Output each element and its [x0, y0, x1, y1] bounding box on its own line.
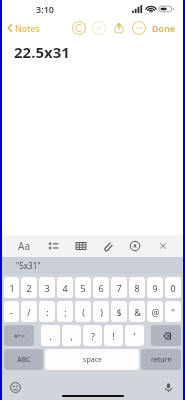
staticText: Aa — [18, 239, 30, 253]
button[interactable]: ) — [93, 301, 109, 322]
staticText: 8 — [134, 282, 140, 294]
button[interactable]: ? — [83, 325, 102, 346]
staticText: @ — [151, 306, 160, 318]
button[interactable]: Close — [156, 239, 170, 253]
button[interactable]: 2 — [21, 277, 37, 298]
button[interactable]: ABC — [4, 349, 43, 370]
staticText: , — [70, 330, 73, 342]
button[interactable]: Attach — [101, 239, 115, 253]
staticText: ! — [112, 330, 115, 342]
button[interactable]: & — [129, 301, 145, 322]
staticText: : — [46, 306, 49, 318]
button[interactable]: Dictate — [163, 382, 174, 393]
staticText: ABC — [17, 355, 31, 365]
button[interactable]: 5 — [75, 277, 91, 298]
staticText: $ — [116, 306, 122, 318]
button[interactable]: ; — [57, 301, 73, 322]
button[interactable]: Lists — [47, 239, 61, 253]
staticText: . — [49, 330, 52, 342]
staticText: return — [151, 355, 172, 365]
button[interactable]: / — [21, 301, 37, 322]
staticText: 22.5x31 — [14, 42, 70, 62]
button[interactable]: @ — [147, 301, 163, 322]
button[interactable]: : — [39, 301, 55, 322]
staticText: 6 — [98, 282, 104, 294]
button[interactable]: $ — [111, 301, 127, 322]
staticText: ; — [64, 306, 67, 318]
button[interactable]: return — [141, 349, 181, 370]
staticText: 5 — [80, 282, 86, 294]
staticText: 9 — [152, 282, 158, 294]
button[interactable]: Backspace — [151, 325, 181, 346]
button[interactable]: " — [165, 301, 181, 322]
button[interactable]: ( — [75, 301, 91, 322]
staticText: / — [27, 306, 31, 318]
button[interactable]: 7 — [111, 277, 127, 298]
button[interactable]: Markup — [128, 239, 142, 253]
staticText: 4 — [62, 282, 68, 294]
staticText: - — [10, 306, 13, 318]
staticText: 2 — [26, 282, 32, 294]
button[interactable]: 8 — [129, 277, 145, 298]
staticText: & — [134, 306, 141, 318]
staticText: space — [83, 355, 102, 365]
staticText: Done — [152, 22, 176, 34]
staticText: Notes — [15, 22, 40, 34]
button[interactable]: ' — [125, 325, 144, 346]
staticText: #+= — [14, 332, 25, 340]
button[interactable]: Emoji — [10, 382, 21, 393]
button[interactable]: 9 — [147, 277, 163, 298]
button[interactable]: - — [4, 301, 19, 322]
staticText: 3:10 — [36, 3, 54, 15]
button[interactable]: 4 — [57, 277, 73, 298]
staticText: " — [171, 306, 175, 318]
button[interactable]: space — [45, 349, 139, 370]
button[interactable]: 6 — [93, 277, 109, 298]
button[interactable]: More — [132, 21, 146, 35]
staticText: 1 — [9, 282, 15, 294]
button[interactable]: Notes — [2, 19, 44, 37]
button[interactable]: Compose — [92, 21, 106, 35]
button[interactable]: Rotate — [72, 21, 86, 35]
staticText: ? — [91, 330, 95, 342]
staticText: ( — [82, 306, 85, 318]
button[interactable]: #+= — [4, 325, 34, 346]
button[interactable]: , — [62, 325, 81, 346]
button[interactable]: Done — [152, 19, 183, 37]
button[interactable]: 3 — [39, 277, 55, 298]
button[interactable]: Aa — [15, 236, 33, 256]
button[interactable]: Share — [112, 21, 126, 35]
button[interactable]: 1 — [4, 277, 19, 298]
button[interactable]: ! — [104, 325, 123, 346]
button[interactable]: . — [41, 325, 60, 346]
button[interactable]: Table — [74, 239, 88, 253]
staticText: 3 — [44, 282, 50, 294]
staticText: "5x31" — [16, 260, 41, 271]
button[interactable]: 0 — [165, 277, 181, 298]
staticText: ) — [100, 306, 103, 318]
staticText: 7 — [116, 282, 122, 294]
staticText: ' — [133, 330, 136, 342]
staticText: 0 — [170, 282, 176, 294]
